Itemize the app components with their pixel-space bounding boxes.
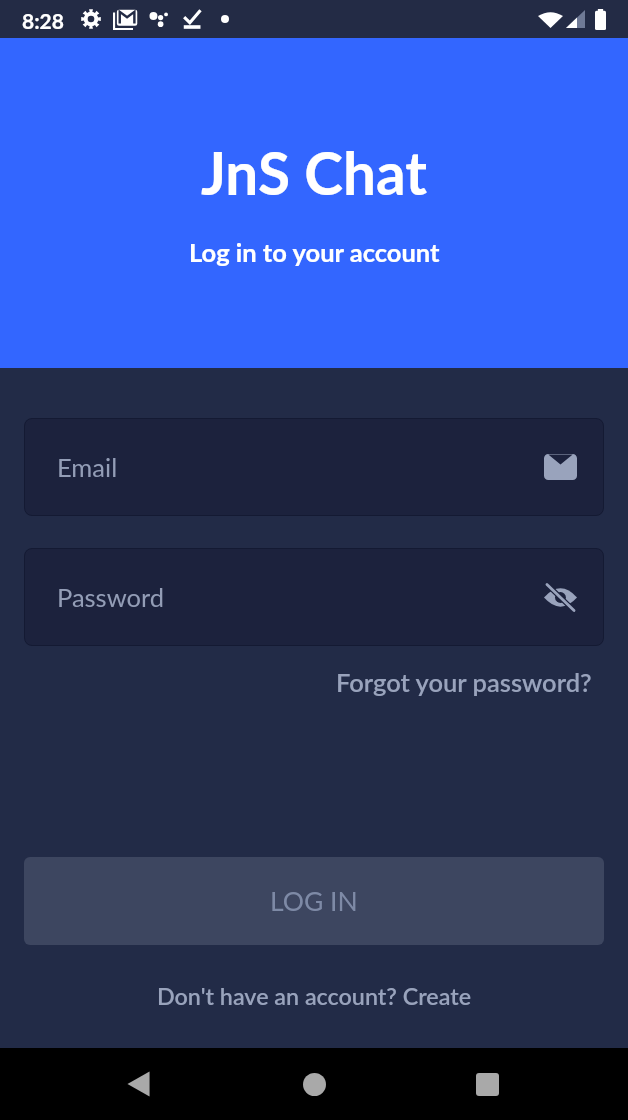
button[interactable]: Back [109,1052,173,1116]
staticText: Forgot your password? [336,667,592,698]
staticText: 8:28 [22,8,64,33]
staticText: Email [57,452,118,483]
staticText: Don't have an account? Create [157,982,472,1010]
staticText: Password [57,582,165,613]
button[interactable]: Recents [455,1052,519,1116]
button[interactable]: Email [24,418,604,516]
staticText: LOG IN [270,885,358,917]
staticText: JnS Chat [201,137,427,207]
button[interactable]: Home [282,1052,346,1116]
button[interactable]: Forgot your password? [326,657,602,708]
staticText: Log in to your account [189,237,440,268]
button[interactable]: Don't have an account? Create [147,972,482,1020]
button[interactable]: Password [24,548,604,646]
button[interactable]: LOG IN [24,857,604,945]
